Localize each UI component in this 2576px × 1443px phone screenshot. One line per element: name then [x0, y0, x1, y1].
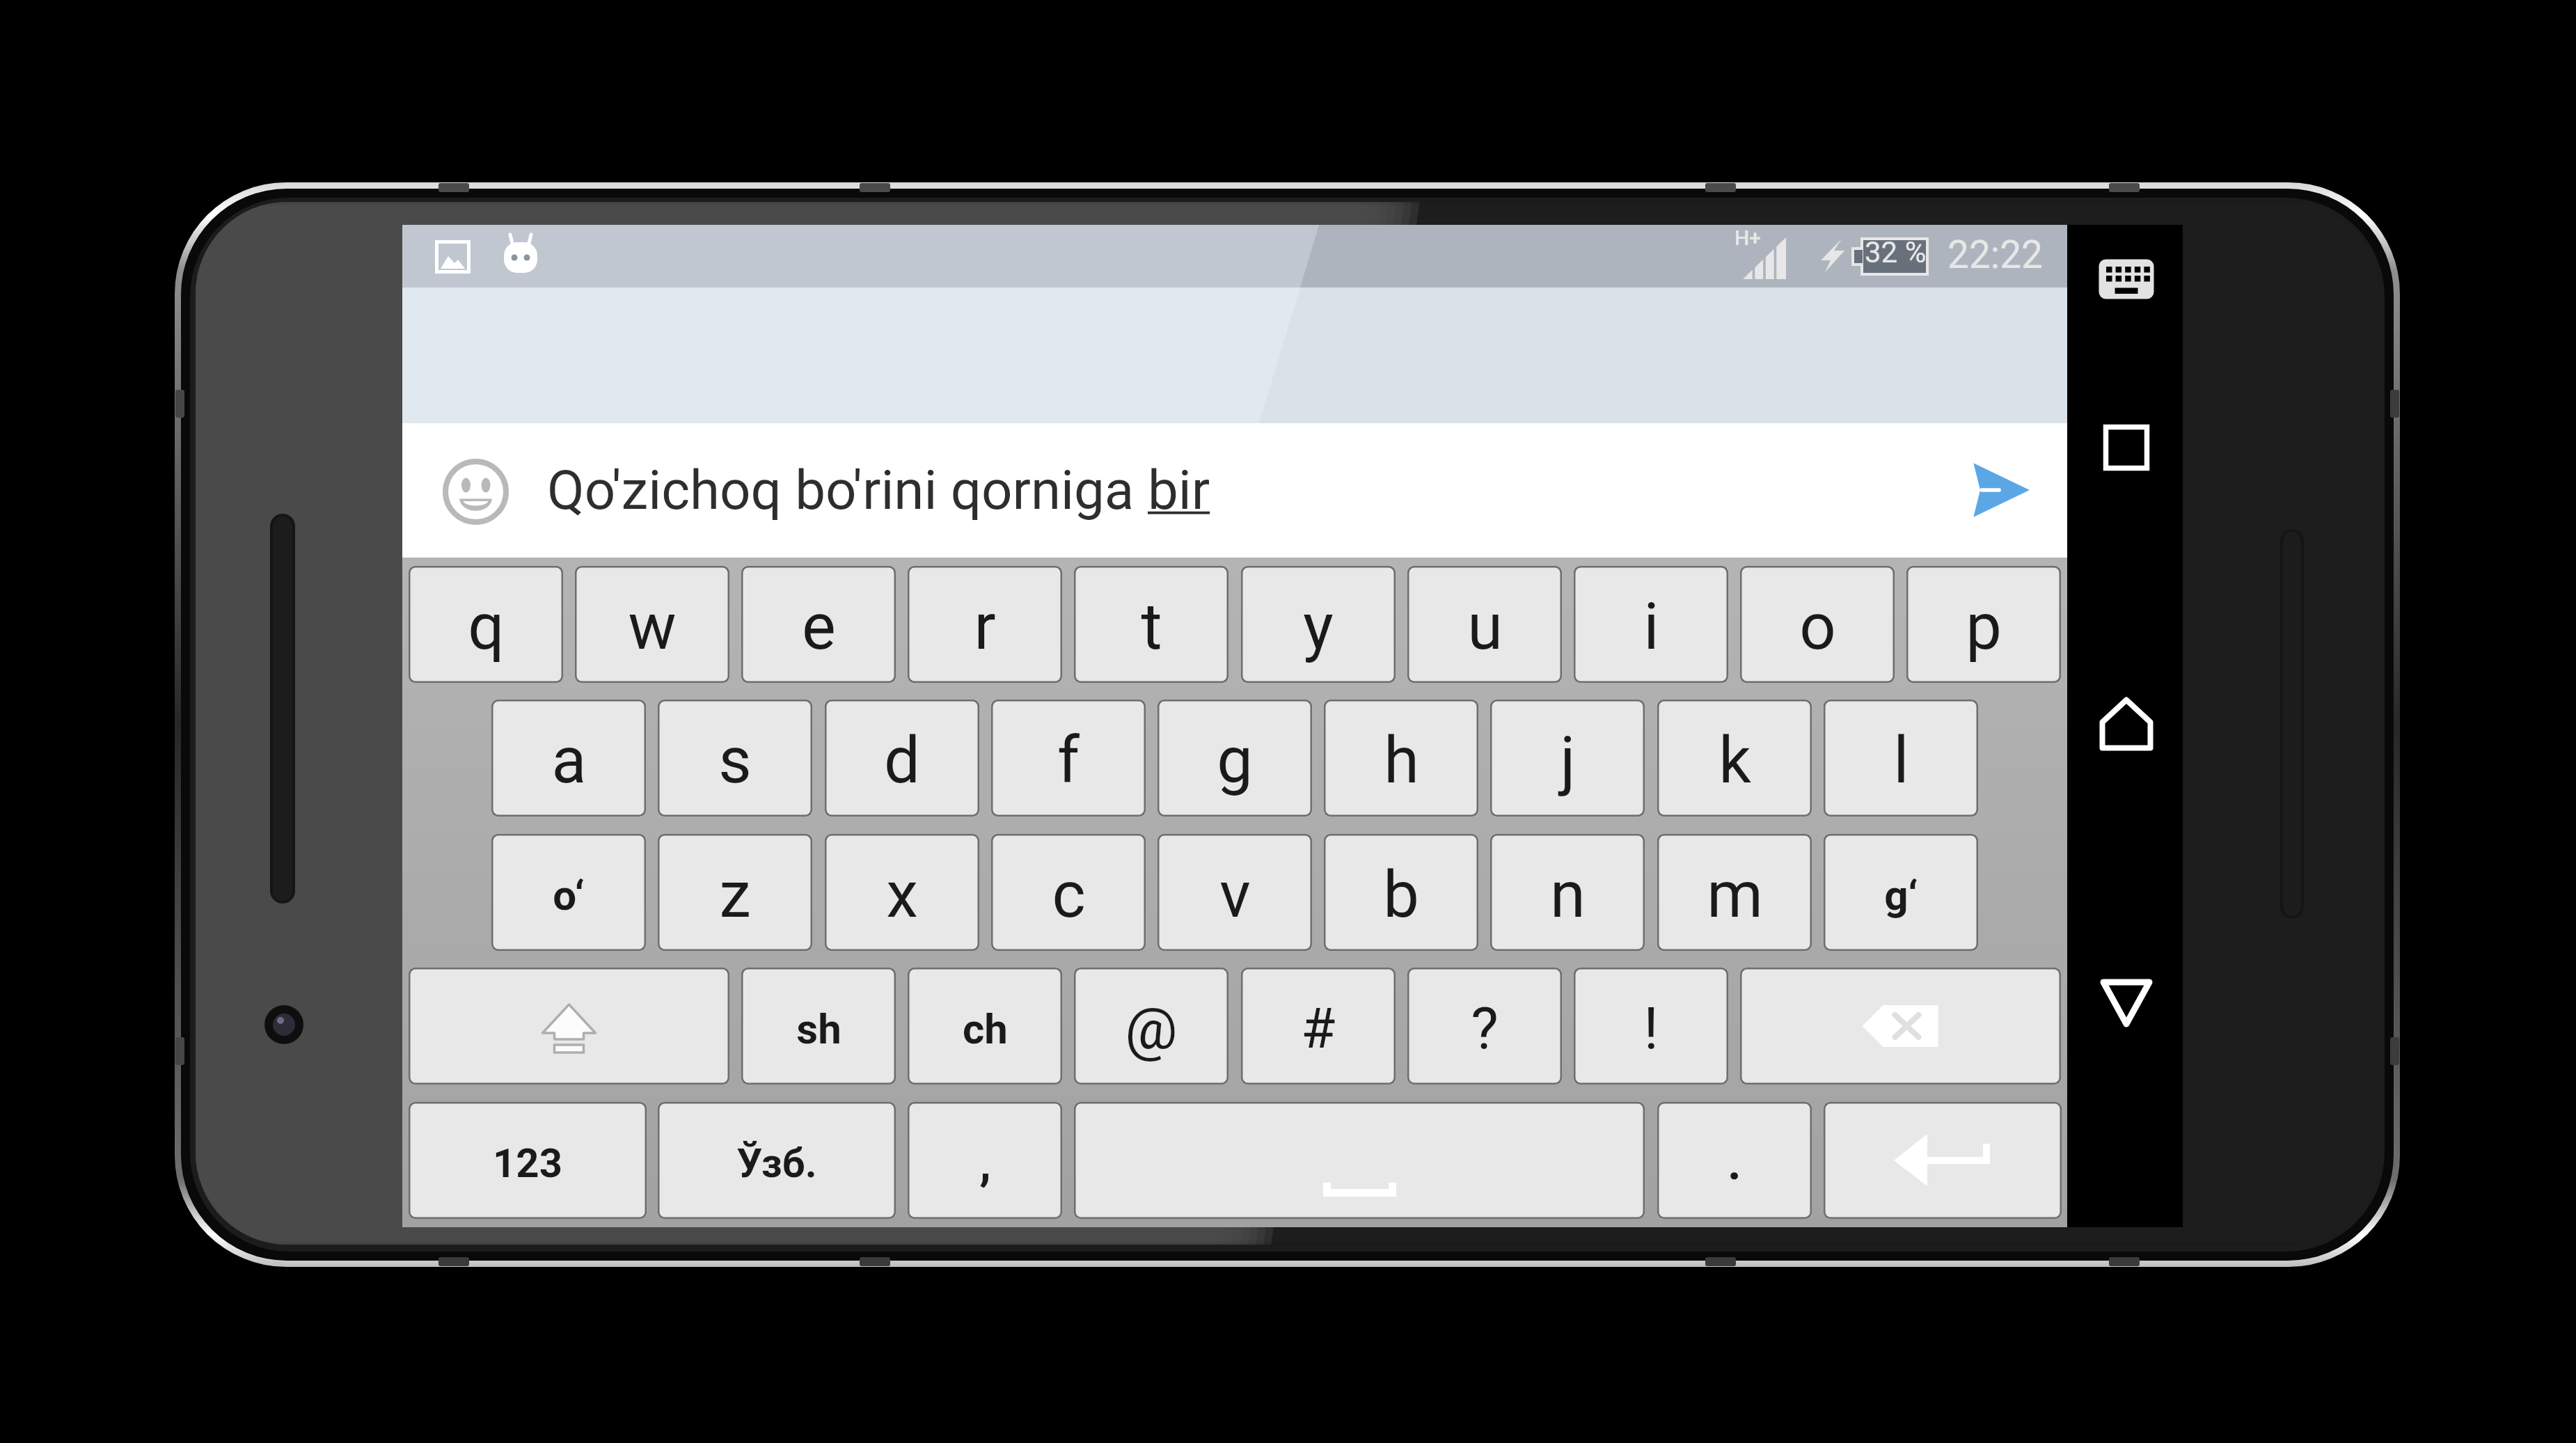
button[interactable]: Ўзб.	[658, 1102, 896, 1219]
staticText: d	[884, 723, 920, 798]
button[interactable]: q	[409, 566, 563, 683]
button[interactable]: Backspace	[1740, 968, 2061, 1085]
button[interactable]: n	[1490, 834, 1645, 951]
staticText: ch	[963, 1004, 1008, 1053]
button[interactable]: !	[1574, 968, 1728, 1085]
staticText: u	[1467, 590, 1503, 665]
button[interactable]: Switch keyboard	[2067, 227, 2183, 331]
button[interactable]: j	[1490, 700, 1645, 817]
button[interactable]: s	[658, 700, 812, 817]
button[interactable]: x	[825, 834, 979, 951]
button[interactable]: d	[825, 700, 979, 817]
staticText: w	[628, 590, 677, 665]
button[interactable]: m	[1657, 834, 1812, 951]
staticText: ,	[979, 1135, 991, 1191]
button[interactable]: t	[1074, 566, 1228, 683]
staticText: !	[1643, 995, 1659, 1063]
button[interactable]: Send	[1971, 461, 2030, 519]
staticText: .	[1728, 1135, 1741, 1191]
staticText: v	[1219, 858, 1251, 933]
button[interactable]: z	[658, 834, 812, 951]
staticText: c	[1052, 858, 1086, 933]
staticText: @	[1125, 995, 1178, 1063]
button[interactable]: l	[1824, 700, 1978, 817]
staticText: g‘	[1884, 871, 1918, 920]
button[interactable]: Back	[2067, 951, 2183, 1055]
staticText: s	[718, 723, 752, 798]
staticText: p	[1966, 590, 2002, 665]
button[interactable]: u	[1407, 566, 1562, 683]
button[interactable]: v	[1157, 834, 1312, 951]
staticText: n	[1550, 858, 1586, 933]
button[interactable]: e	[741, 566, 896, 683]
button[interactable]: c	[991, 834, 1146, 951]
staticText: l	[1893, 723, 1909, 798]
button[interactable]: o	[1740, 566, 1895, 683]
staticText: #	[1301, 996, 1336, 1062]
staticText: sh	[796, 1004, 841, 1053]
button[interactable]: k	[1657, 700, 1812, 817]
staticText: t	[1141, 590, 1162, 665]
button[interactable]: .	[1657, 1102, 1812, 1219]
staticText: r	[974, 590, 996, 665]
staticText: k	[1718, 723, 1751, 798]
button[interactable]: ch	[908, 968, 1062, 1085]
button[interactable]: o‘	[491, 834, 646, 951]
staticText: h	[1384, 723, 1419, 798]
staticText: b	[1383, 858, 1419, 933]
button[interactable]: h	[1324, 700, 1478, 817]
button[interactable]: r	[908, 566, 1062, 683]
button[interactable]: Space	[1074, 1102, 1645, 1219]
button[interactable]: g‘	[1824, 834, 1978, 951]
button[interactable]: g	[1157, 700, 1312, 817]
staticText: g	[1217, 723, 1253, 798]
staticText: x	[886, 858, 918, 933]
staticText: 22:22	[1947, 232, 2043, 277]
button[interactable]: Recent apps	[2067, 395, 2183, 500]
button[interactable]: ,	[908, 1102, 1062, 1219]
staticText: Qo'zichoq bo'rini qorniga	[547, 459, 1148, 522]
button[interactable]: p	[1906, 566, 2061, 683]
button[interactable]: sh	[741, 968, 896, 1085]
staticText: y	[1303, 590, 1334, 665]
button[interactable]: 123	[409, 1102, 647, 1219]
button[interactable]: b	[1324, 834, 1478, 951]
staticText: m	[1707, 858, 1763, 933]
staticText: H+	[1735, 226, 1762, 250]
button[interactable]: @	[1074, 968, 1228, 1085]
staticText: 123	[493, 1140, 562, 1187]
staticText: f	[1057, 723, 1080, 798]
staticText: Ўзб.	[736, 1140, 817, 1187]
button[interactable]: f	[991, 700, 1146, 817]
staticText: o‘	[553, 871, 585, 920]
button[interactable]: Home	[2067, 672, 2183, 776]
staticText: 32 %	[1865, 235, 1927, 269]
staticText: ?	[1471, 995, 1499, 1063]
button[interactable]: #	[1241, 968, 1396, 1085]
button[interactable]: a	[491, 700, 646, 817]
button[interactable]: ?	[1407, 968, 1562, 1085]
staticText: j	[1560, 723, 1576, 798]
button[interactable]: y	[1241, 566, 1396, 683]
button[interactable]: w	[575, 566, 729, 683]
button[interactable]: i	[1574, 566, 1728, 683]
staticText: q	[468, 590, 505, 665]
staticText: i	[1643, 590, 1659, 665]
button[interactable]: Emoji	[443, 459, 509, 526]
staticText: bir	[1148, 459, 1210, 522]
button[interactable]: Enter	[1824, 1102, 2062, 1219]
staticText: o	[1799, 590, 1836, 665]
staticText: a	[551, 723, 587, 798]
staticText: z	[719, 858, 751, 933]
button[interactable]: Shift	[409, 968, 729, 1085]
staticText: e	[802, 590, 836, 665]
